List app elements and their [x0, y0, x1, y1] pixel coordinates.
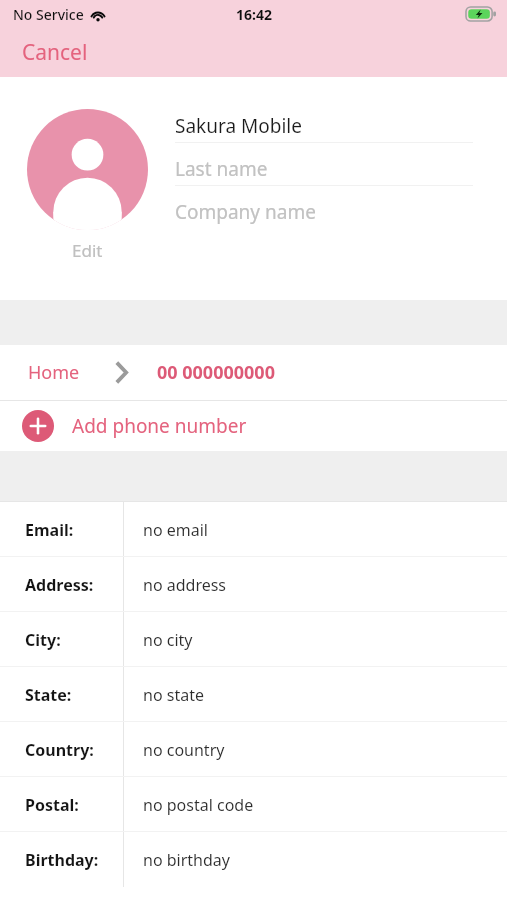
staticText: no country: [143, 739, 225, 761]
button[interactable]: Edit photo: [27, 109, 148, 262]
staticText: Home: [28, 360, 80, 385]
staticText: 16:42: [236, 5, 272, 24]
staticText: Company name: [175, 199, 316, 225]
staticText: No Service: [13, 5, 84, 24]
staticText: no address: [143, 574, 227, 596]
button[interactable]: Company name: [175, 196, 473, 228]
staticText: no email: [143, 519, 208, 541]
staticText: no postal code: [143, 794, 254, 816]
staticText: Country:: [25, 739, 94, 761]
staticText: Sakura Mobile: [175, 113, 302, 139]
button[interactable]: Country:: [0, 722, 507, 777]
staticText: Cancel: [22, 38, 88, 67]
staticText: State:: [25, 684, 72, 706]
staticText: no state: [143, 684, 204, 706]
button[interactable]: Last name: [175, 153, 473, 196]
staticText: Address:: [25, 574, 94, 596]
button[interactable]: Cancel: [0, 29, 110, 76]
button[interactable]: Sakura Mobile: [175, 110, 473, 153]
staticText: Email:: [25, 519, 74, 541]
button[interactable]: Home: [0, 345, 507, 400]
staticText: Edit: [72, 239, 103, 262]
staticText: no birthday: [143, 849, 230, 871]
staticText: Birthday:: [25, 849, 99, 871]
staticText: Add phone number: [72, 413, 247, 439]
staticText: Last name: [175, 156, 268, 182]
button[interactable]: Email:: [0, 502, 507, 557]
staticText: no city: [143, 629, 193, 651]
staticText: City:: [25, 629, 61, 651]
staticText: 00 000000000: [157, 360, 275, 385]
button[interactable]: Postal:: [0, 777, 507, 832]
button[interactable]: State:: [0, 667, 507, 722]
button[interactable]: Address:: [0, 557, 507, 612]
button[interactable]: City:: [0, 612, 507, 667]
staticText: Postal:: [25, 794, 79, 816]
button[interactable]: Add phone number: [0, 401, 507, 451]
button[interactable]: Birthday:: [0, 832, 507, 887]
